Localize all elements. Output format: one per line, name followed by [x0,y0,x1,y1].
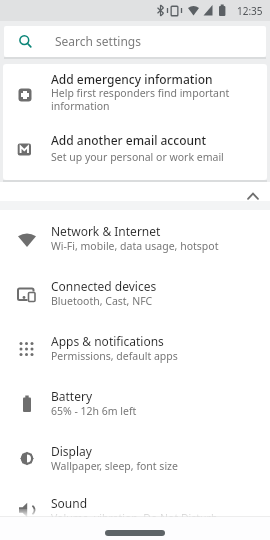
staticText: Wallpaper, sleep, font size [51,459,178,473]
button[interactable] [0,182,270,201]
button[interactable] [4,26,266,57]
staticText: Display [51,443,92,459]
staticText: Connected devices [51,278,157,294]
button[interactable] [3,64,267,122]
button[interactable] [0,375,270,430]
staticText: Add emergency information [51,71,213,87]
button[interactable] [3,122,267,180]
staticText: Volume, vibration, Do Not Disturb [51,511,218,525]
staticText: Network & Internet [51,223,161,239]
button[interactable] [0,430,270,485]
staticText: Set up your personal or work email [51,150,224,164]
button[interactable] [105,530,165,536]
staticText: Battery [51,388,93,404]
staticText: Add another email account [51,132,207,148]
staticText: Bluetooth, Cast, NFC [51,294,153,308]
staticText: Help first responders find important [51,86,230,100]
staticText: Apps & notifications [51,333,164,349]
staticText: Permissions, default apps [51,349,178,363]
staticText: information [51,99,110,113]
button[interactable] [0,265,270,320]
staticText: 12:35 [237,4,263,18]
button[interactable] [0,320,270,375]
staticText: Sound [51,495,88,511]
staticText: Wi-Fi, mobile, data usage, hotspot [51,239,219,253]
button[interactable] [0,482,270,537]
staticText: Search settings [55,33,141,49]
staticText: 65% - 12h 6m left [51,404,137,418]
button[interactable] [0,210,270,265]
